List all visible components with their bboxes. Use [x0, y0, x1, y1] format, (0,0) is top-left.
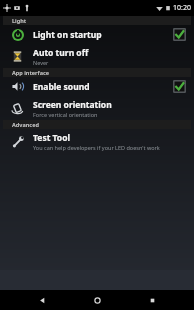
- staticText: You can help developers if your LED does…: [33, 144, 160, 151]
- button[interactable]: Enable sound: [0, 77, 194, 96]
- button[interactable]: Screen orientation: [0, 96, 194, 120]
- staticText: Never: [33, 59, 49, 66]
- button[interactable]: Toggle: [173, 80, 186, 93]
- staticText: 10:20: [173, 3, 191, 13]
- staticText: Test Tool: [33, 132, 71, 144]
- button[interactable]: Back: [29, 290, 55, 310]
- staticText: Force vertical orientation: [33, 111, 98, 118]
- button[interactable]: Test Tool: [0, 129, 194, 153]
- staticText: Screen orientation: [33, 99, 112, 111]
- staticText: App interface: [12, 69, 50, 76]
- staticText: Auto turn off: [33, 47, 89, 59]
- button[interactable]: Toggle: [173, 28, 186, 41]
- button[interactable]: Auto turn off: [0, 44, 194, 68]
- button[interactable]: Light on startup: [0, 25, 194, 44]
- staticText: Enable sound: [33, 81, 90, 93]
- staticText: Light on startup: [33, 29, 102, 41]
- staticText: Light: [12, 17, 27, 24]
- staticText: Advanced: [12, 121, 39, 128]
- button[interactable]: Recents: [139, 290, 165, 310]
- button[interactable]: Home: [84, 290, 110, 310]
